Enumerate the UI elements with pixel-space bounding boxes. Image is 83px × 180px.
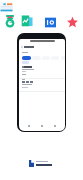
button[interactable]: Back <box>20 45 24 49</box>
button[interactable]: Home <box>40 124 44 128</box>
button[interactable] <box>22 56 31 60</box>
button[interactable]: Back <box>27 124 31 128</box>
button[interactable] <box>22 61 29 64</box>
button[interactable]: Calendar app <box>45 17 56 28</box>
button[interactable]: Sheets app <box>21 15 33 27</box>
button[interactable]: Award app <box>4 15 16 27</box>
button[interactable]: Recents <box>53 124 57 128</box>
button[interactable]: Favourite <box>67 17 78 28</box>
button[interactable] <box>19 65 65 80</box>
button[interactable] <box>19 78 65 93</box>
